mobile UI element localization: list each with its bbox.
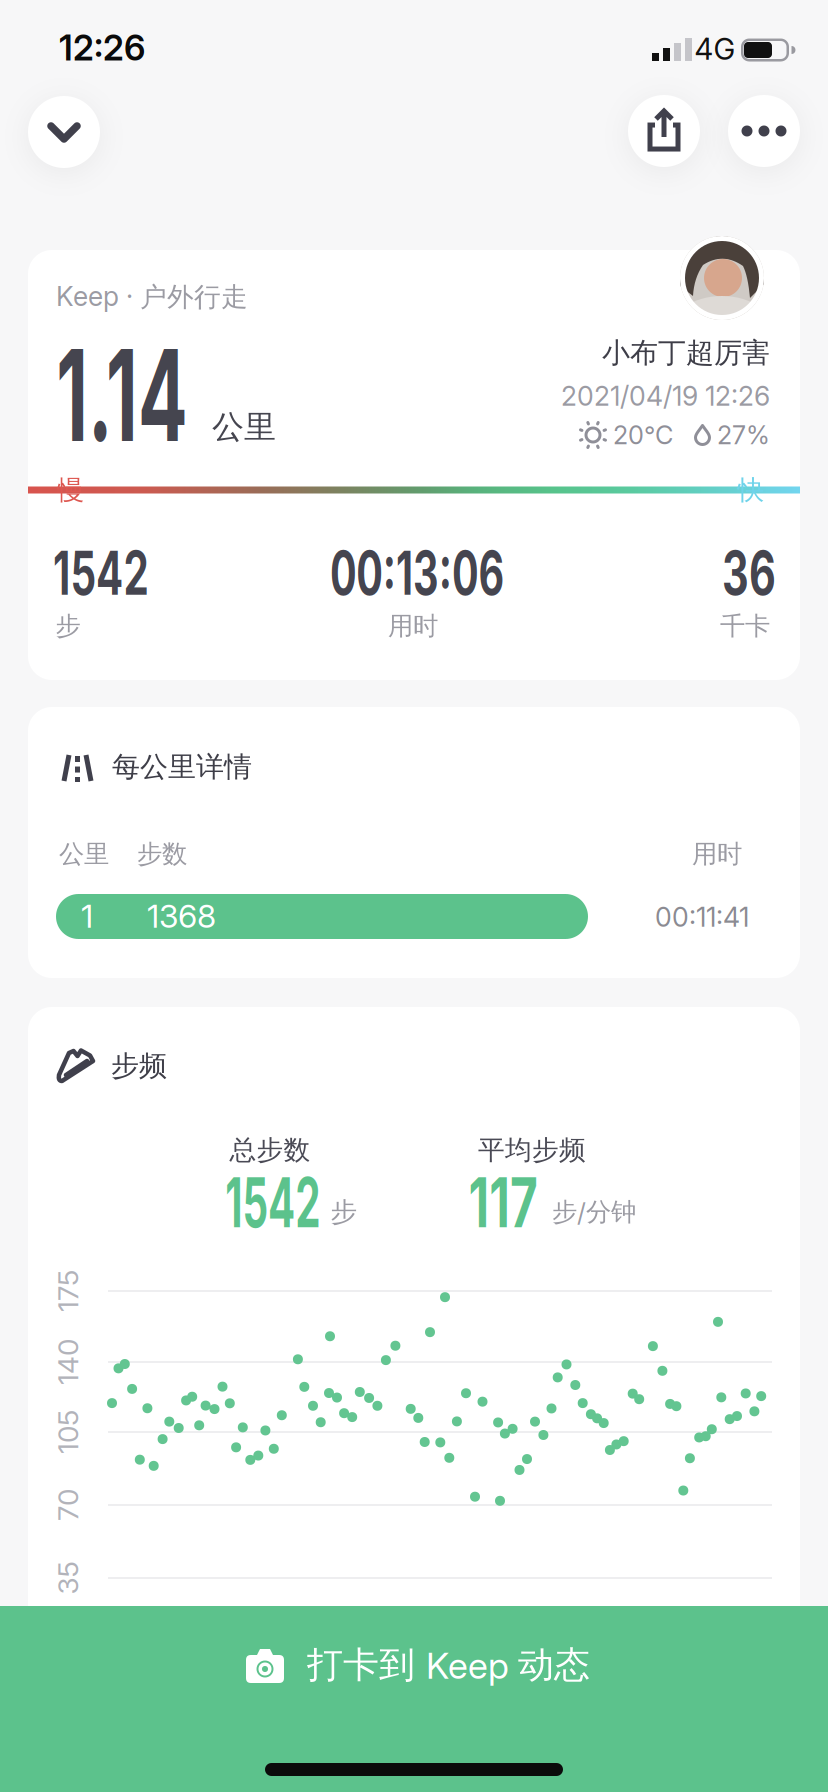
button[interactable]: Close xyxy=(28,96,100,168)
staticText: 1542 xyxy=(29,537,172,609)
staticText: 用时 xyxy=(388,610,438,642)
staticText: 快 xyxy=(737,473,764,507)
staticText: 105 xyxy=(46,1415,90,1449)
staticText: 打卡到 Keep 动态 xyxy=(307,1642,590,1688)
staticText: 千卡 xyxy=(720,610,770,642)
staticText: 用时 xyxy=(692,838,742,870)
staticText: 35 xyxy=(51,1561,84,1595)
staticText: 70 xyxy=(52,1488,84,1522)
staticText: 1.14 xyxy=(8,318,235,472)
staticText: 12:26 xyxy=(59,27,145,69)
staticText: 1368 xyxy=(147,897,216,935)
staticText: 步频 xyxy=(111,1048,167,1084)
staticText: 1542 xyxy=(190,1160,355,1244)
button[interactable]: 打卡到 Keep 动态 xyxy=(0,1606,828,1792)
staticText: 平均步频 xyxy=(478,1133,586,1167)
staticText: 公里 xyxy=(212,407,276,447)
staticText: 公里 xyxy=(59,838,109,870)
staticText: 27% xyxy=(717,420,770,450)
staticText: 175 xyxy=(47,1274,89,1308)
staticText: 140 xyxy=(45,1345,91,1379)
staticText: 117 xyxy=(453,1160,553,1244)
staticText: 4G xyxy=(694,31,735,67)
staticText: 36 xyxy=(710,537,788,609)
staticText: 每公里详情 xyxy=(112,749,252,785)
staticText: 步 xyxy=(55,610,80,642)
staticText: 00:13:06 xyxy=(285,537,549,609)
staticText: 2021/04/19 12:26 xyxy=(561,380,770,412)
staticText: 总步数 xyxy=(229,1133,310,1167)
staticText: 步/分钟 xyxy=(552,1196,636,1228)
staticText: Keep · 户外行走 xyxy=(56,280,248,314)
staticText: 20°C xyxy=(613,420,673,450)
staticText: 慢 xyxy=(57,473,84,507)
staticText: 小布丁超厉害 xyxy=(602,335,770,371)
staticText: 1 xyxy=(81,897,93,935)
button[interactable]: More xyxy=(728,95,800,167)
staticText: 步数 xyxy=(137,838,187,870)
staticText: 00:11:41 xyxy=(655,901,749,933)
staticText: 步 xyxy=(330,1195,357,1229)
button[interactable]: Share xyxy=(628,95,700,167)
